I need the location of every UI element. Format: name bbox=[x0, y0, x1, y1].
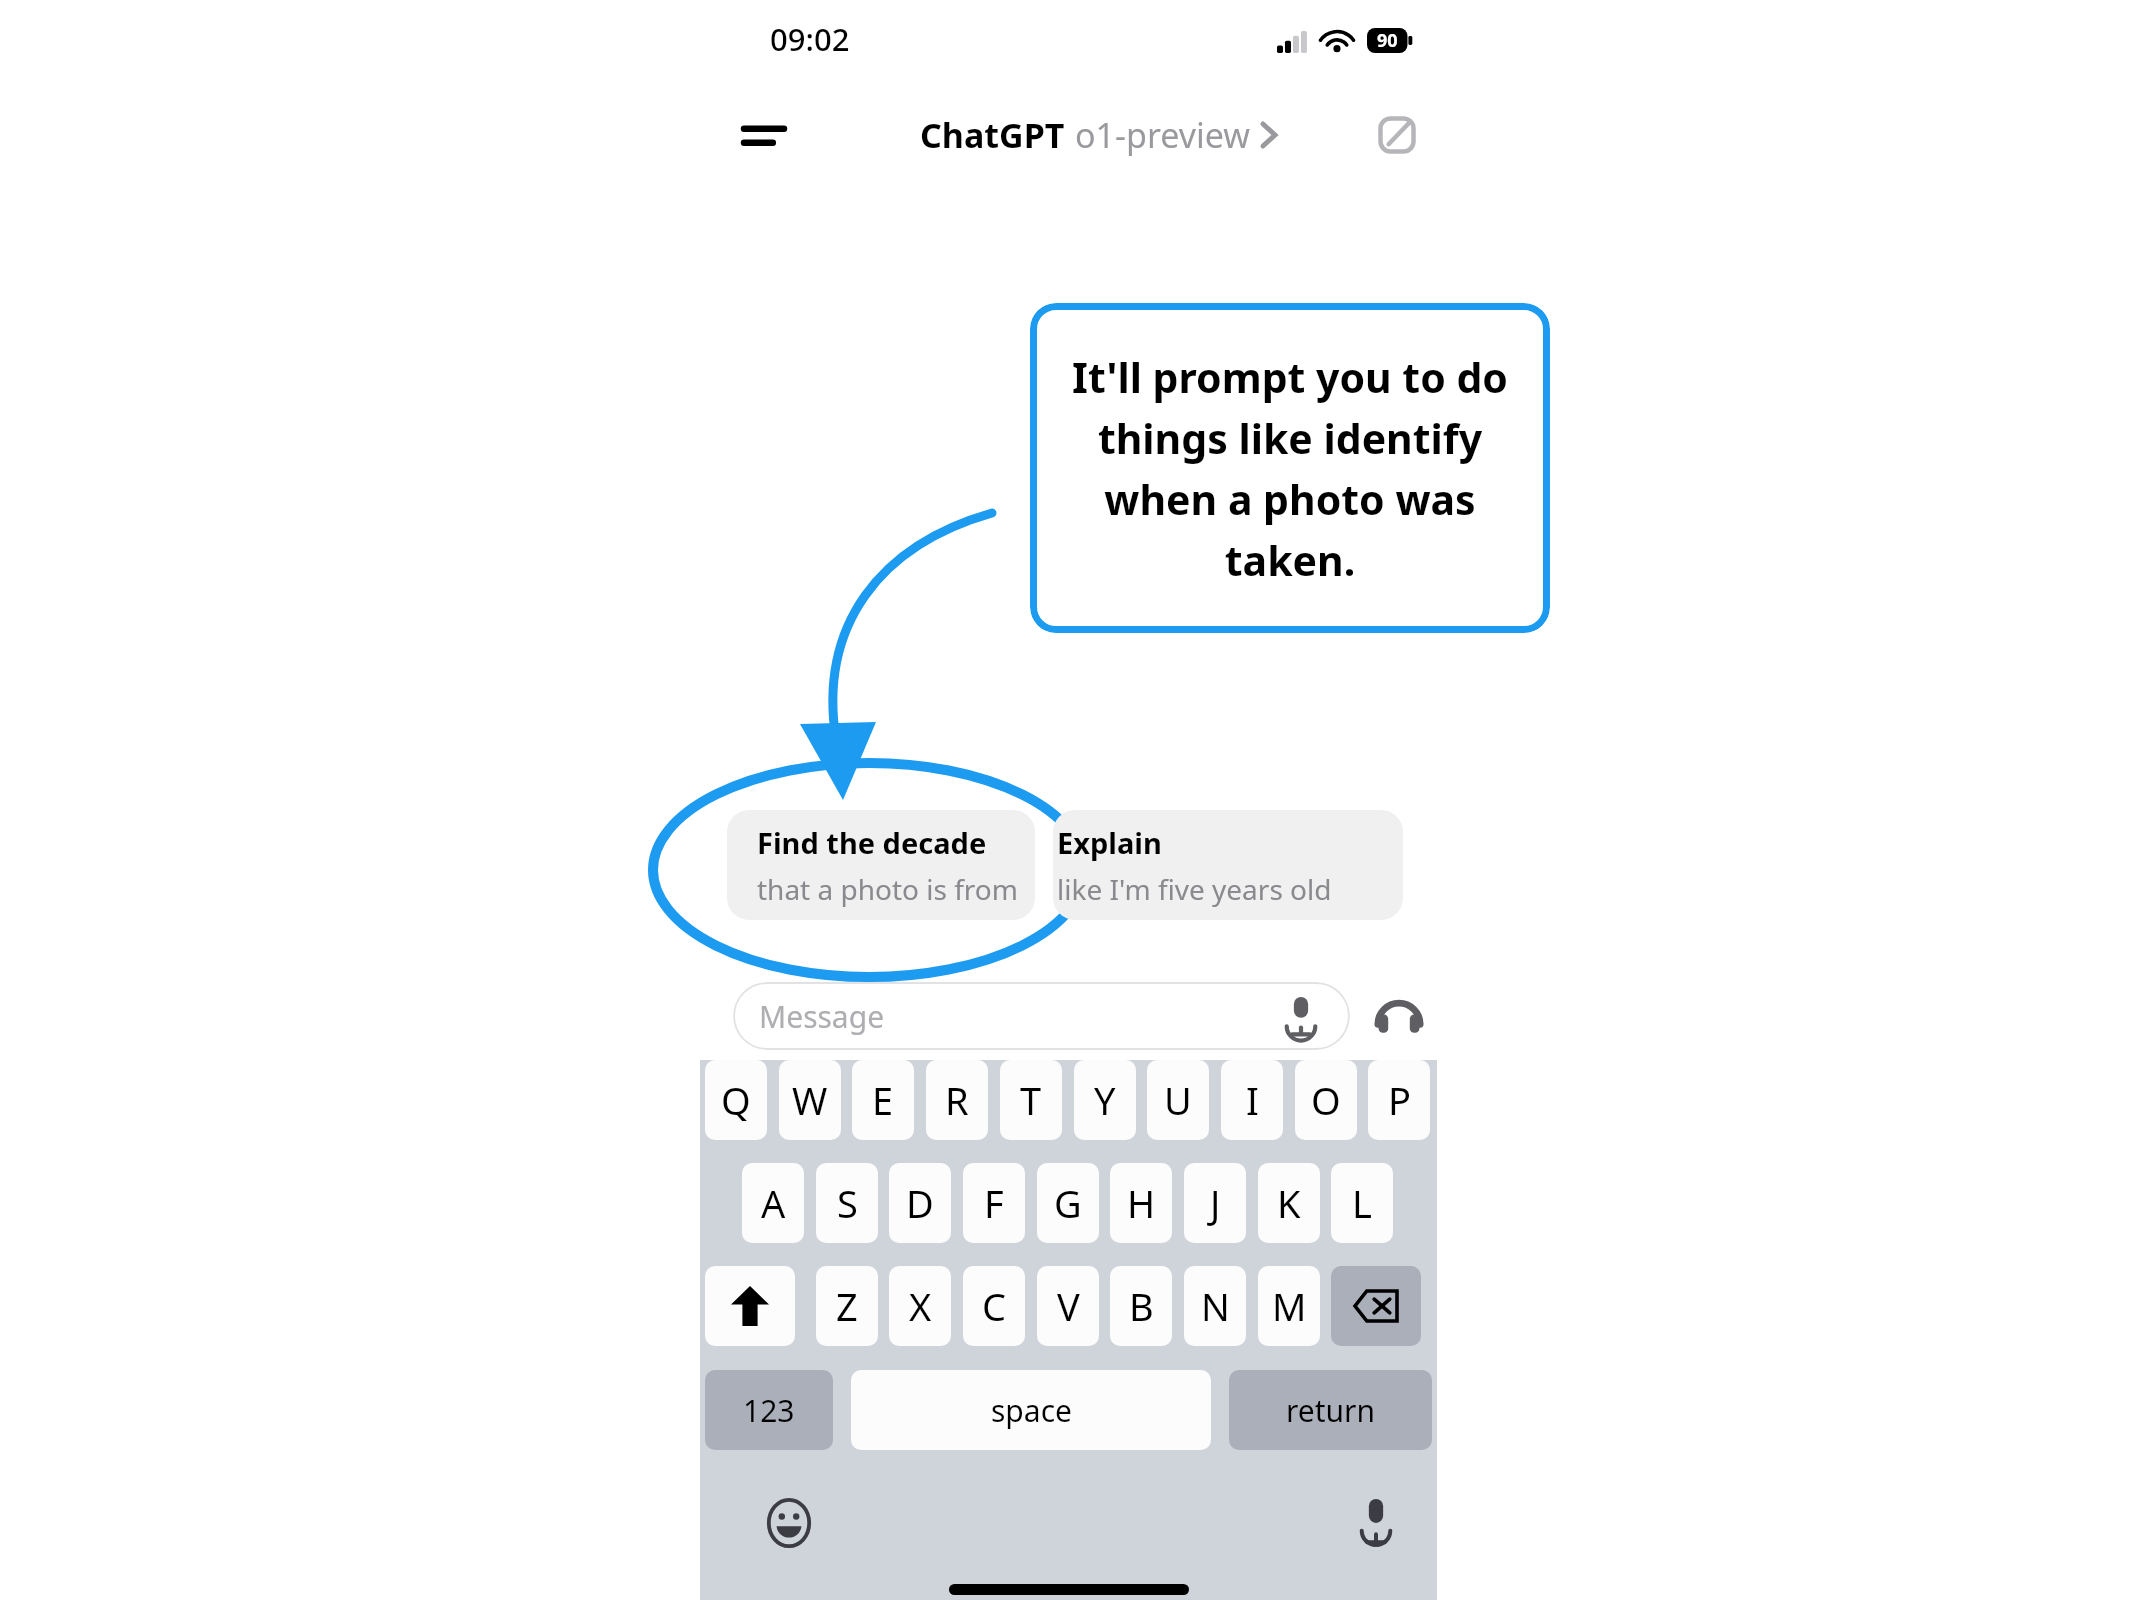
staticText: K bbox=[1277, 1177, 1301, 1229]
button[interactable]: G bbox=[1037, 1163, 1099, 1243]
staticText: Y bbox=[1094, 1074, 1116, 1126]
staticText: space bbox=[991, 1390, 1072, 1431]
button[interactable]: V bbox=[1037, 1266, 1099, 1346]
staticText: X bbox=[909, 1280, 932, 1332]
button[interactable]: H bbox=[1110, 1163, 1172, 1243]
button[interactable]: L bbox=[1331, 1163, 1393, 1243]
button[interactable]: U bbox=[1147, 1060, 1209, 1140]
button[interactable]: Explain superconductors bbox=[1053, 810, 1403, 920]
button[interactable]: K bbox=[1258, 1163, 1320, 1243]
staticText: 09:02 bbox=[770, 18, 850, 60]
staticText: Z bbox=[836, 1280, 858, 1332]
button[interactable]: B bbox=[1110, 1266, 1172, 1346]
button[interactable]: M bbox=[1258, 1266, 1320, 1346]
staticText: T bbox=[1020, 1074, 1042, 1126]
button[interactable]: C bbox=[963, 1266, 1025, 1346]
staticText: It'll prompt you to do things like ident… bbox=[1056, 349, 1524, 588]
button[interactable]: Voice mode bbox=[1370, 987, 1428, 1045]
button[interactable]: A bbox=[742, 1163, 804, 1243]
staticText: W bbox=[792, 1074, 828, 1126]
staticText: A bbox=[761, 1177, 786, 1229]
staticText: return bbox=[1286, 1390, 1376, 1431]
button[interactable]: space bbox=[851, 1370, 1211, 1450]
button[interactable]: New chat bbox=[1368, 106, 1426, 164]
staticText: H bbox=[1127, 1177, 1156, 1229]
staticText: F bbox=[984, 1177, 1004, 1229]
staticText: G bbox=[1054, 1177, 1082, 1229]
button[interactable]: N bbox=[1184, 1266, 1246, 1346]
staticText: N bbox=[1201, 1280, 1230, 1332]
staticText: I bbox=[1246, 1074, 1259, 1126]
button[interactable]: Q bbox=[705, 1060, 767, 1140]
staticText: that a photo is from bbox=[757, 870, 1018, 908]
staticText: Message bbox=[759, 996, 885, 1037]
staticText: Find the decade bbox=[757, 823, 987, 862]
button[interactable]: D bbox=[889, 1163, 951, 1243]
button[interactable]: Voice input bbox=[1345, 1490, 1407, 1552]
staticText: P bbox=[1388, 1074, 1411, 1126]
button[interactable]: T bbox=[1000, 1060, 1062, 1140]
button[interactable]: S bbox=[816, 1163, 878, 1243]
staticText: V bbox=[1057, 1280, 1080, 1332]
staticText: J bbox=[1210, 1177, 1221, 1229]
other: Dictate bbox=[1284, 996, 1324, 1036]
button[interactable]: 123 bbox=[705, 1370, 833, 1450]
staticText: ChatGPT bbox=[920, 112, 1065, 158]
staticText: 123 bbox=[743, 1390, 795, 1431]
staticText: like I'm five years old bbox=[1057, 870, 1332, 908]
button[interactable]: J bbox=[1184, 1163, 1246, 1243]
staticText: O bbox=[1311, 1074, 1341, 1126]
button[interactable]: Z bbox=[816, 1266, 878, 1346]
button[interactable]: Message bbox=[733, 982, 1350, 1050]
button[interactable]: P bbox=[1368, 1060, 1430, 1140]
button[interactable]: Backspace bbox=[1331, 1266, 1421, 1346]
button[interactable]: Find the decade bbox=[727, 810, 1035, 920]
staticText: o1-preview bbox=[1075, 112, 1250, 158]
staticText: D bbox=[906, 1177, 934, 1229]
staticText: S bbox=[837, 1177, 858, 1229]
staticText: B bbox=[1129, 1280, 1154, 1332]
staticText: C bbox=[982, 1280, 1007, 1332]
staticText: Explain superconductors bbox=[1057, 823, 1403, 862]
button[interactable]: X bbox=[889, 1266, 951, 1346]
button[interactable]: Shift bbox=[705, 1266, 795, 1346]
staticText: 90 bbox=[1377, 28, 1398, 53]
staticText: L bbox=[1352, 1177, 1372, 1229]
button[interactable]: Y bbox=[1074, 1060, 1136, 1140]
button[interactable]: W bbox=[779, 1060, 841, 1140]
button[interactable]: F bbox=[963, 1163, 1025, 1243]
staticText: R bbox=[945, 1074, 969, 1126]
button[interactable]: E bbox=[852, 1060, 914, 1140]
staticText: U bbox=[1164, 1074, 1192, 1126]
staticText: Q bbox=[721, 1074, 751, 1126]
button[interactable]: Menu bbox=[736, 107, 792, 163]
staticText: E bbox=[872, 1074, 894, 1126]
button[interactable]: ChatGPT bbox=[920, 106, 1276, 164]
button[interactable]: Emoji bbox=[758, 1492, 820, 1554]
staticText: M bbox=[1272, 1280, 1307, 1332]
button[interactable]: return bbox=[1229, 1370, 1432, 1450]
button[interactable]: I bbox=[1221, 1060, 1283, 1140]
button[interactable]: R bbox=[926, 1060, 988, 1140]
button[interactable]: O bbox=[1295, 1060, 1357, 1140]
